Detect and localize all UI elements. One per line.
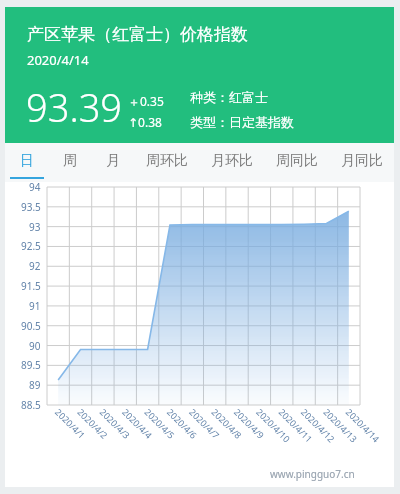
staticText: 类型：日定基指数 (190, 114, 294, 130)
button[interactable]: 日 (5, 143, 48, 182)
button[interactable]: 月环比 (199, 143, 264, 182)
staticText: ＋0.35 (128, 93, 164, 109)
staticText: 周 (63, 152, 77, 170)
staticText: 2020/4/14 (27, 51, 89, 69)
staticText: 月环比 (211, 152, 253, 170)
other: Price index chart (5, 182, 394, 487)
button[interactable]: 月 (91, 143, 134, 182)
staticText: 产区苹果（红富士）价格指数 (27, 24, 248, 45)
staticText: 种类：红富士 (190, 89, 268, 105)
staticText: 周环比 (146, 152, 188, 170)
button[interactable]: 月同比 (329, 143, 394, 182)
staticText: 月 (106, 152, 120, 170)
button[interactable]: 周环比 (134, 143, 199, 182)
button[interactable]: 周 (48, 143, 91, 182)
staticText: 日 (20, 152, 34, 170)
staticText: 月同比 (341, 152, 383, 170)
staticText: 93.39 (26, 81, 123, 133)
staticText: ↑0.38 (128, 114, 162, 130)
button[interactable]: 周同比 (264, 143, 329, 182)
staticText: 周同比 (276, 152, 318, 170)
